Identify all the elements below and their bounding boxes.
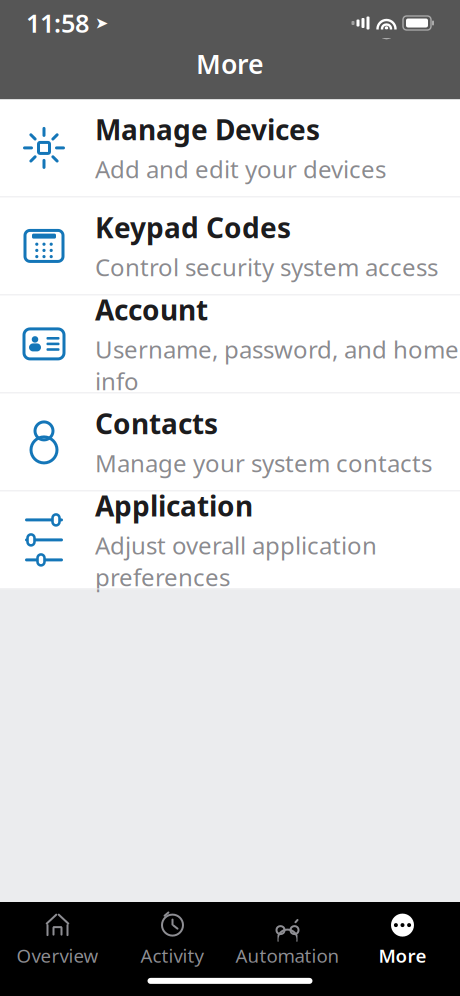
staticText: Add and edit your devices xyxy=(95,153,386,185)
staticText: ➤ xyxy=(95,14,108,32)
staticText: Username, password, and home info xyxy=(95,333,459,397)
button[interactable]: Contacts xyxy=(0,393,460,491)
staticText: Contacts xyxy=(95,405,218,442)
staticText: Overview xyxy=(16,943,98,968)
staticText: Manage Devices xyxy=(95,111,320,148)
staticText: More xyxy=(196,46,264,81)
button[interactable]: Overview xyxy=(0,900,115,978)
staticText: Account xyxy=(95,291,208,328)
button[interactable]: Account xyxy=(0,295,460,393)
staticText: Application xyxy=(95,487,253,524)
button[interactable]: Manage Devices xyxy=(0,99,460,197)
staticText: More xyxy=(378,943,426,968)
staticText: Automation xyxy=(235,943,339,968)
staticText: Control security system access xyxy=(95,251,438,283)
staticText: Activity xyxy=(140,943,204,968)
button[interactable]: More xyxy=(0,46,460,99)
button[interactable]: Activity xyxy=(115,900,230,978)
button[interactable]: Application xyxy=(0,491,460,589)
staticText: Manage your system contacts xyxy=(95,447,432,479)
staticText: Keypad Codes xyxy=(95,209,291,246)
button[interactable]: More xyxy=(345,900,460,978)
staticText: Adjust overall application preferences xyxy=(95,529,377,593)
button[interactable]: Automation xyxy=(230,900,345,978)
button[interactable]: Keypad Codes xyxy=(0,197,460,295)
staticText: 11:58 xyxy=(26,6,89,40)
